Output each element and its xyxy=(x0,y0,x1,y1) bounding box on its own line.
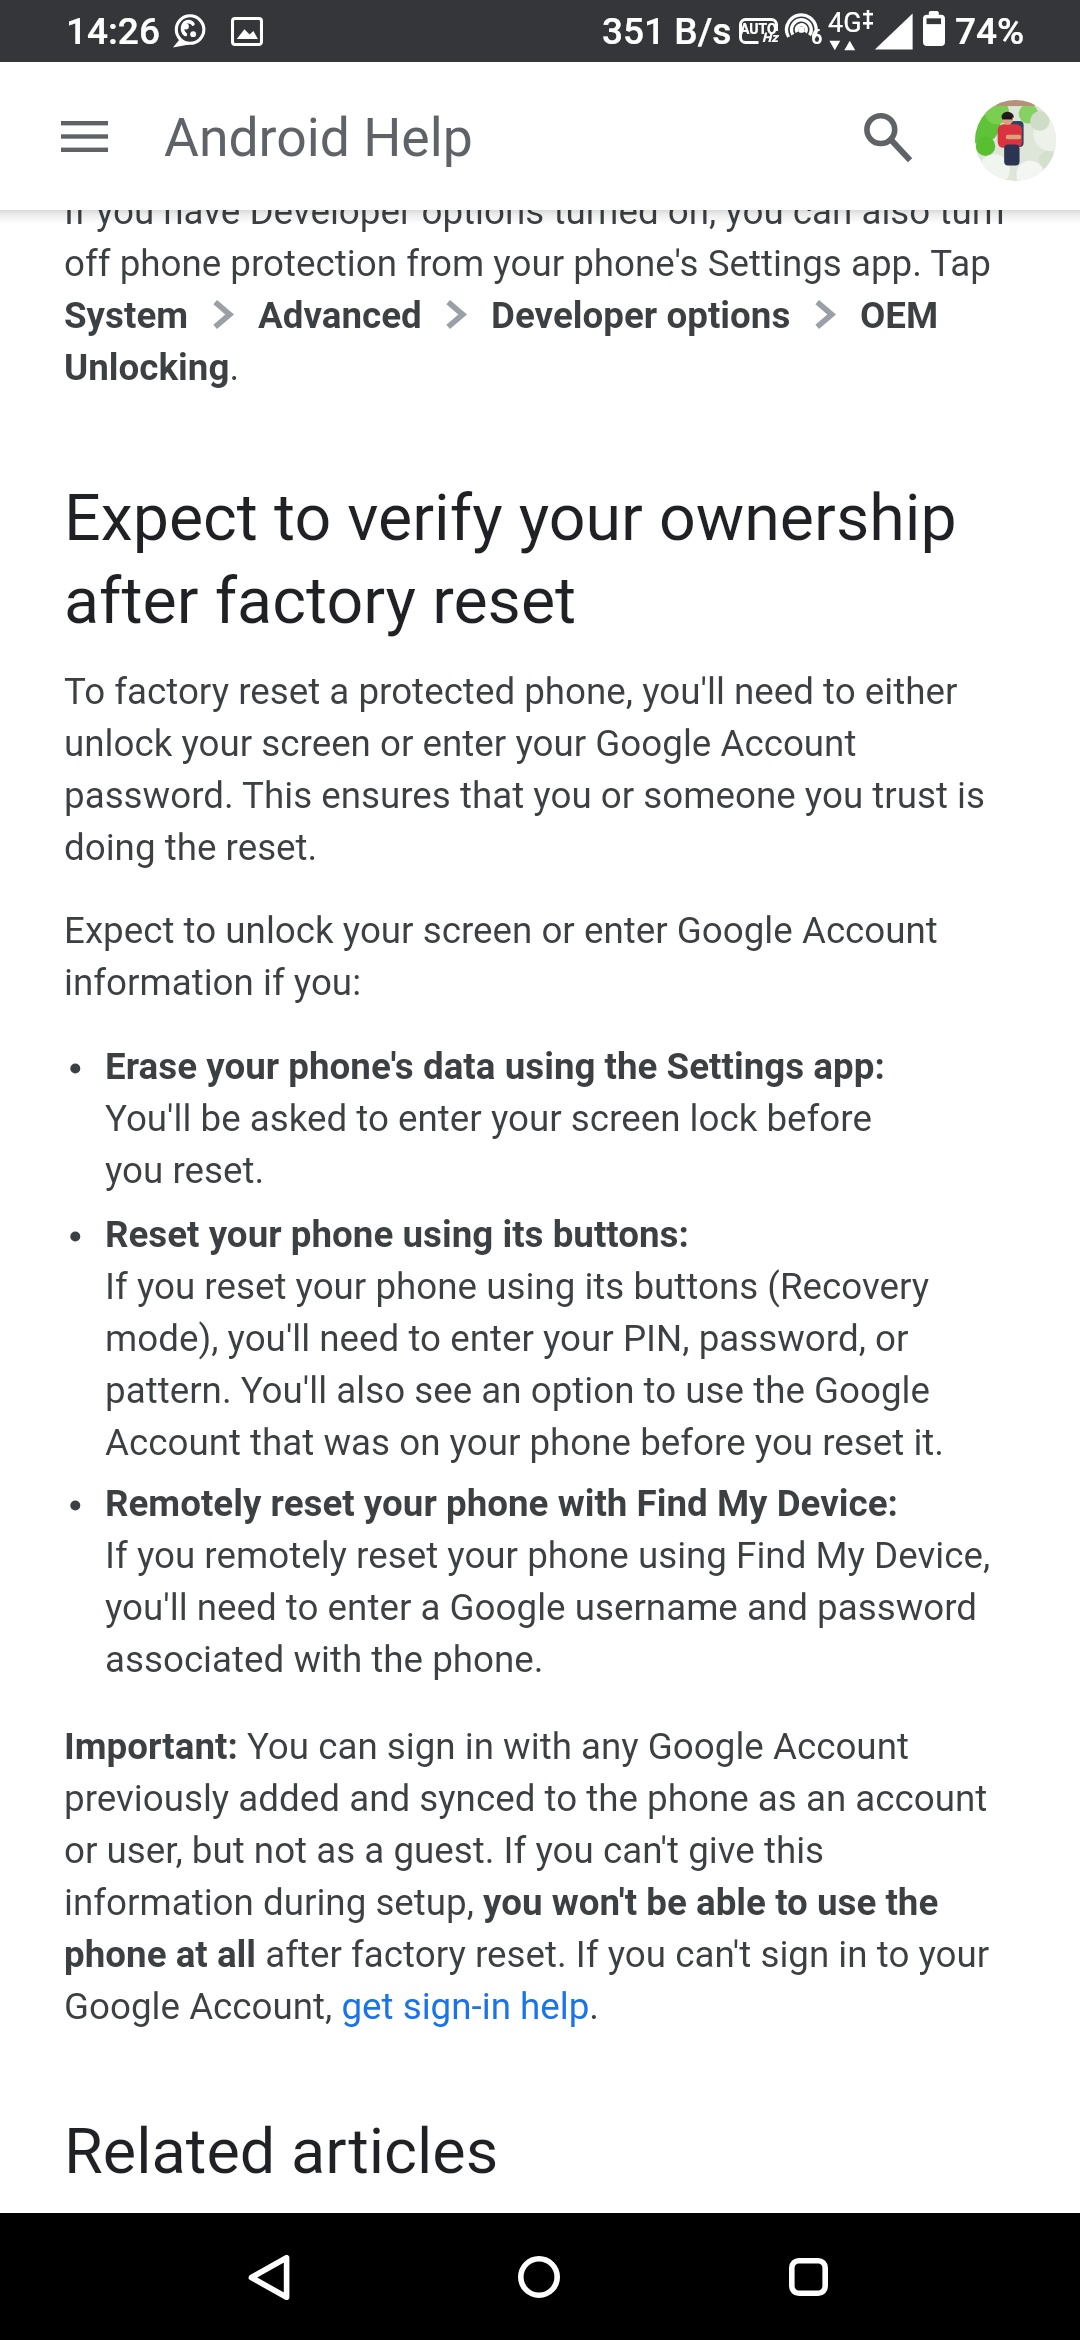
staticText: Developer options xyxy=(491,287,791,339)
staticText: System xyxy=(64,287,189,339)
staticText: If you have Developer options turned on,… xyxy=(64,183,1005,287)
staticText: Related articles xyxy=(64,2107,499,2190)
staticText: 4G xyxy=(828,10,862,38)
staticText: Expect to verify your ownership after fa… xyxy=(64,474,957,640)
staticText: OEM xyxy=(860,287,939,339)
staticText: 14:26 xyxy=(66,11,160,53)
button[interactable]: Account xyxy=(975,100,1056,181)
staticText: Reset your phone using its buttons: If y… xyxy=(105,1206,945,1466)
button[interactable]: Back xyxy=(209,2217,329,2337)
staticText: Expect to unlock your screen or enter Go… xyxy=(64,902,938,1006)
button[interactable]: Recent apps xyxy=(748,2217,868,2337)
staticText: 74% xyxy=(955,11,1025,53)
button[interactable]: Open navigation menu xyxy=(24,76,144,196)
staticText: Important: You can sign in with any Goog… xyxy=(64,1718,990,2030)
staticText: Remotely reset your phone with Find My D… xyxy=(105,1475,991,1683)
staticText: Unlocking. xyxy=(64,339,240,391)
staticText: To factory reset a protected phone, you'… xyxy=(64,663,986,871)
staticText: Erase your phone's data using the Settin… xyxy=(105,1038,885,1194)
staticText: Android Help xyxy=(164,107,473,169)
staticText: 6 xyxy=(811,27,823,48)
staticText: 351 B/s xyxy=(602,11,732,53)
staticText: Hz xyxy=(762,31,778,45)
staticText: Advanced xyxy=(258,287,422,339)
button[interactable]: Search xyxy=(828,80,940,192)
staticText: AUTO xyxy=(740,22,777,37)
button[interactable]: Home xyxy=(479,2217,599,2337)
